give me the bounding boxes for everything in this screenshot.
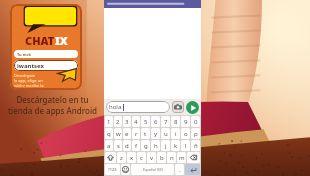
staticText: w	[116, 130, 121, 138]
staticText: d	[125, 142, 129, 150]
button[interactable]: Emoji	[121, 164, 130, 175]
button[interactable]: hola	[109, 101, 170, 113]
button[interactable]: CHAT	[10, 4, 82, 90]
button[interactable]: Chat title bar	[104, 0, 201, 8]
staticText: e	[125, 130, 129, 138]
button[interactable]: z	[117, 152, 126, 163]
button[interactable]: c	[137, 152, 146, 163]
staticText: IX	[55, 33, 68, 48]
button[interactable]: a	[105, 140, 113, 151]
button[interactable]: j	[161, 140, 170, 151]
button[interactable]: g	[141, 140, 150, 151]
button[interactable]: 9	[181, 116, 190, 127]
staticText: Descárgatelo en tu	[16, 94, 89, 105]
button[interactable]: x	[127, 152, 136, 163]
staticText: la app, elige un	[14, 78, 43, 83]
button[interactable]: y	[151, 128, 160, 139]
staticText: o	[184, 130, 188, 138]
button[interactable]: s	[114, 140, 122, 151]
staticText: p	[194, 130, 198, 138]
button[interactable]: iwantsex	[17, 60, 78, 71]
button[interactable]: 6	[151, 116, 160, 127]
staticText: ñ	[194, 142, 198, 150]
staticText: 6	[154, 118, 158, 126]
button[interactable]: u	[161, 128, 170, 139]
staticText: l	[185, 142, 187, 150]
staticText: 2	[116, 118, 120, 126]
staticText: 7	[164, 118, 168, 126]
staticText: v	[150, 154, 154, 162]
button[interactable]: q	[105, 128, 113, 139]
staticText: nick y escribe la	[14, 83, 44, 87]
button[interactable]: ñ	[191, 140, 200, 151]
button[interactable]: Send	[186, 101, 199, 114]
button[interactable]: 1	[105, 116, 113, 127]
button[interactable]: e	[123, 128, 131, 139]
staticText: q	[107, 130, 111, 138]
staticText: 1	[107, 118, 111, 126]
staticText: z	[120, 154, 123, 162]
button[interactable]: 3	[123, 116, 131, 127]
button[interactable]: d	[123, 140, 131, 151]
button[interactable]: ?123	[105, 164, 120, 175]
staticText: iwantsex	[17, 62, 44, 70]
staticText: .	[179, 166, 181, 174]
staticText: f	[135, 142, 138, 150]
button[interactable]: i	[171, 128, 180, 139]
button[interactable]: v	[147, 152, 156, 163]
staticText: y	[154, 130, 158, 138]
staticText: CHAT	[25, 33, 55, 48]
staticText: 8	[174, 118, 178, 126]
staticText: u	[164, 130, 168, 138]
staticText: j	[165, 142, 167, 150]
staticText: t	[144, 130, 147, 138]
staticText: tienda de apps Android	[8, 105, 97, 116]
staticText: r	[135, 130, 138, 138]
staticText: b	[160, 154, 164, 162]
button[interactable]: Shift	[105, 152, 116, 163]
button[interactable]: .	[175, 164, 184, 175]
button[interactable]: w	[114, 128, 122, 139]
button[interactable]: b	[157, 152, 166, 163]
staticText: a	[107, 142, 111, 150]
staticText: c	[140, 154, 143, 162]
button[interactable]: 4	[132, 116, 140, 127]
button[interactable]: 7	[161, 116, 170, 127]
staticText: Español (ES)	[143, 167, 163, 172]
button[interactable]: Enter	[185, 164, 200, 175]
button[interactable]: Camera	[172, 101, 184, 113]
button[interactable]: Español (ES)	[131, 164, 174, 175]
staticText: ?123	[108, 167, 117, 172]
staticText: x	[130, 154, 134, 162]
button[interactable]: o	[181, 128, 190, 139]
staticText: Descárgate	[14, 73, 36, 78]
button[interactable]: 8	[171, 116, 180, 127]
button[interactable]: r	[132, 128, 140, 139]
button[interactable]: 5	[141, 116, 150, 127]
button[interactable]: k	[171, 140, 180, 151]
staticText: k	[174, 142, 178, 150]
button[interactable]: t	[141, 128, 150, 139]
staticText: m	[179, 154, 185, 162]
button[interactable]: p	[191, 128, 200, 139]
staticText: 5	[144, 118, 148, 126]
staticText: s	[117, 142, 120, 150]
button[interactable]: m	[177, 152, 186, 163]
staticText: n	[170, 154, 174, 162]
button[interactable]: Backspace	[187, 152, 200, 163]
button[interactable]: 2	[114, 116, 122, 127]
staticText: 0	[194, 118, 198, 126]
staticText: 3	[125, 118, 129, 126]
button[interactable]: f	[132, 140, 140, 151]
staticText: hola	[109, 103, 122, 111]
staticText: i	[175, 130, 177, 138]
staticText: g	[144, 142, 148, 150]
button[interactable]: 0	[191, 116, 200, 127]
staticText: 4	[134, 118, 138, 126]
button[interactable]: h	[151, 140, 160, 151]
staticText: h	[154, 142, 158, 150]
button[interactable]: n	[167, 152, 176, 163]
button[interactable]: l	[181, 140, 190, 151]
staticText: Tu nick	[17, 52, 32, 57]
staticText: 9	[184, 118, 188, 126]
